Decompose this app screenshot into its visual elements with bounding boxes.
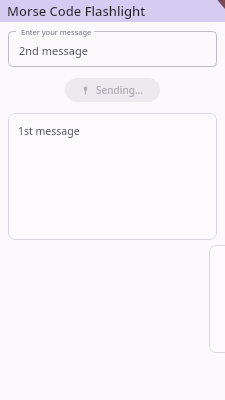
staticText: 2nd message	[19, 43, 88, 58]
staticText: Sending...	[96, 83, 144, 97]
staticText: Enter your message	[21, 27, 92, 37]
button[interactable]: 1st message	[8, 113, 217, 240]
staticText: 1st message	[18, 124, 80, 138]
button[interactable]: Sending...	[65, 78, 160, 102]
button[interactable]: Next message card	[209, 245, 225, 353]
staticText: Morse Code Flashlight	[7, 2, 146, 20]
